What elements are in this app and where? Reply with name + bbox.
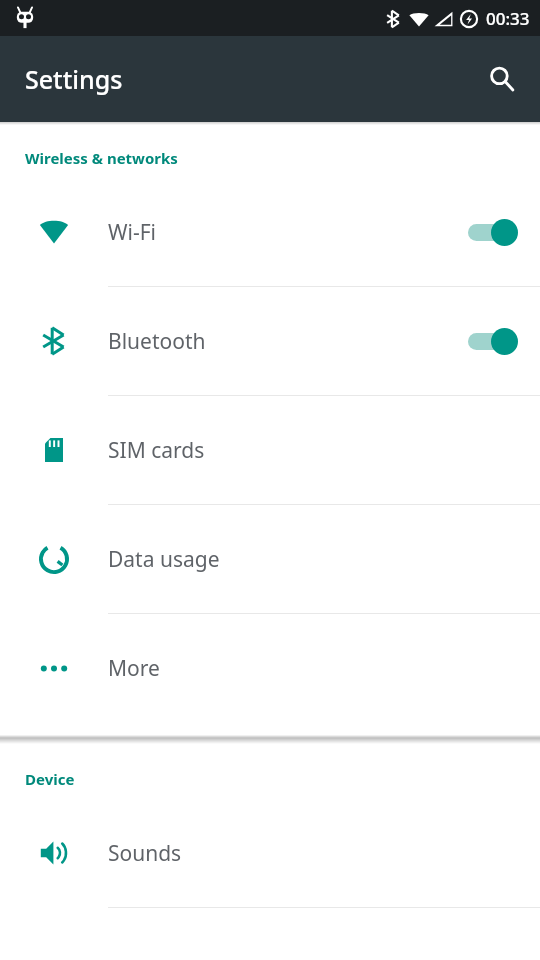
button[interactable]: SIM cards — [0, 396, 540, 504]
button[interactable]: Data usage — [0, 505, 540, 613]
staticText: SIM cards — [108, 436, 540, 465]
staticText: Data usage — [108, 545, 540, 574]
staticText: Wi-Fi — [108, 218, 466, 247]
button[interactable]: Wi-Fi — [0, 178, 540, 286]
staticText: Sounds — [108, 839, 540, 868]
staticText: More — [108, 654, 540, 683]
staticText: 00:33 — [486, 7, 530, 30]
button[interactable]: Sounds — [0, 799, 540, 907]
button[interactable]: Toggle — [466, 326, 518, 356]
button[interactable]: Search — [478, 55, 526, 103]
staticText: Settings — [25, 62, 123, 96]
staticText: Bluetooth — [108, 327, 466, 356]
staticText: Device — [25, 769, 75, 789]
staticText: Wireless & networks — [25, 148, 178, 168]
button[interactable]: Toggle — [466, 217, 518, 247]
button[interactable]: More — [0, 614, 540, 722]
button[interactable]: Bluetooth — [0, 287, 540, 395]
